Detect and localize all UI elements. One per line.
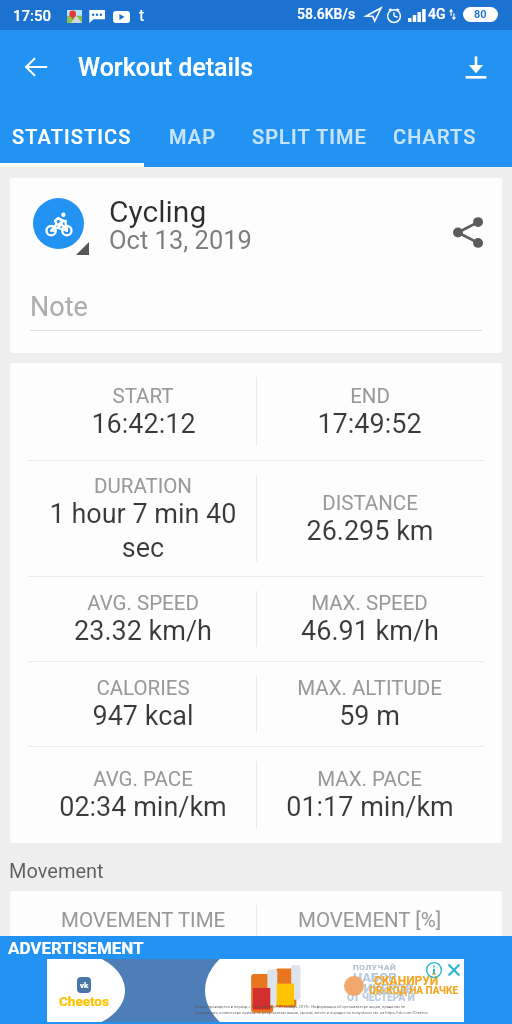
staticText: НАБОР	[353, 970, 397, 985]
button[interactable]: SPLIT TIME	[240, 104, 378, 167]
staticText: QR-КОД НА ПАЧКЕ	[369, 985, 459, 997]
staticText: MOVEMENT [%]	[298, 908, 442, 932]
button[interactable]: Download	[454, 45, 498, 89]
staticText: 16:42:12	[91, 408, 196, 440]
staticText: START	[112, 384, 174, 408]
staticText: DURATION	[94, 474, 192, 498]
staticText: 58.6KB/s	[297, 6, 356, 22]
staticText: MAX. ALTITUDE	[297, 676, 442, 700]
staticText: CHARTS	[393, 125, 477, 148]
staticText: 26.295 km	[306, 515, 434, 547]
staticText: Cycling	[109, 194, 207, 229]
staticText: 17:50	[13, 7, 52, 25]
staticText: MAX. PACE	[317, 767, 422, 791]
button[interactable]: Back	[14, 45, 58, 89]
staticText: END	[350, 384, 390, 408]
staticText: Note	[30, 291, 88, 323]
staticText: Movement	[9, 859, 104, 882]
staticText: 02:34 min/km	[59, 791, 227, 823]
button[interactable]: Share	[444, 208, 492, 256]
staticText: ADVERTISEMENT	[8, 938, 144, 958]
staticText: 947 kcal	[92, 700, 194, 732]
button[interactable]: STATISTICS	[0, 104, 144, 167]
staticText: 59 m	[339, 700, 400, 732]
button[interactable]: Activity type	[33, 198, 100, 265]
button[interactable]: Ad info	[426, 962, 442, 978]
staticText: t	[139, 6, 145, 25]
staticText: 4G	[428, 6, 446, 22]
staticText: СКАНИРУЙ	[374, 974, 439, 988]
staticText: AVG. PACE	[93, 767, 193, 791]
staticText: Cheetos	[59, 993, 109, 1009]
staticText: ПОЛУЧАЙ	[353, 963, 397, 972]
staticText: vk	[80, 981, 89, 990]
staticText: SPLIT TIME	[252, 125, 367, 148]
staticText: CALORIES	[96, 676, 190, 700]
staticText: 80	[474, 8, 487, 21]
button[interactable]: Close ad	[446, 962, 462, 978]
staticText: Workout details	[78, 53, 254, 82]
staticText: 1 hour 7 min 40 sec	[38, 498, 248, 564]
staticText: ОТ ЧЕСТЕРА И	[347, 992, 415, 1004]
staticText: STATISTICS	[12, 125, 132, 148]
staticText: Oct 13, 2019	[109, 225, 252, 255]
staticText: Акция проводится в период с 1 сентября п…	[195, 1004, 428, 1015]
staticText: СТИКЕРОВ	[347, 981, 414, 996]
button[interactable]: CHARTS	[378, 104, 492, 167]
button[interactable]: MAP	[144, 104, 240, 167]
staticText: DISTANCE	[322, 491, 418, 515]
staticText: 23.32 km/h	[74, 615, 212, 647]
staticText: AVG. SPEED	[87, 591, 199, 615]
staticText: MAX. SPEED	[311, 591, 428, 615]
staticText: MOVEMENT TIME	[61, 908, 226, 932]
staticText: 01:17 min/km	[286, 791, 454, 823]
button[interactable]: Advertisement	[47, 959, 464, 1022]
staticText: 46.91 km/h	[301, 615, 439, 647]
staticText: 17:49:52	[317, 408, 422, 440]
staticText: MAP	[169, 125, 216, 148]
